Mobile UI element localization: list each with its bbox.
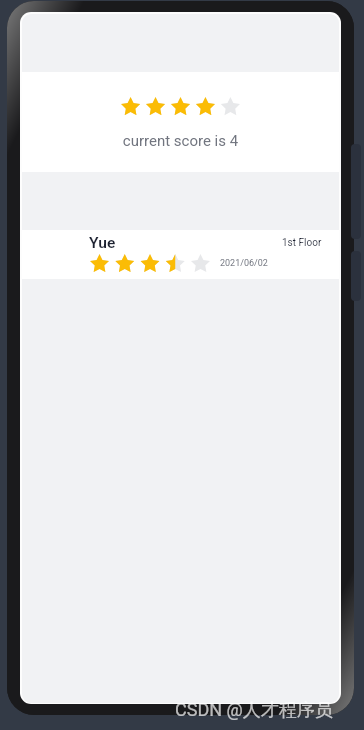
staticText: 1st Floor bbox=[282, 237, 322, 249]
other: Rating 3.5 out of 5 stars bbox=[90, 254, 210, 272]
staticText: Yue bbox=[89, 234, 116, 252]
button[interactable]: Yue bbox=[22, 230, 339, 279]
other: Rating 4 out of 5 stars bbox=[121, 97, 240, 115]
staticText: 2021/06/02 bbox=[220, 258, 268, 269]
staticText: current score is 4 bbox=[22, 132, 339, 150]
staticText: CSDN @人才程序员 bbox=[175, 699, 333, 722]
button[interactable]: Rating 4 out of 5 stars bbox=[22, 72, 339, 172]
